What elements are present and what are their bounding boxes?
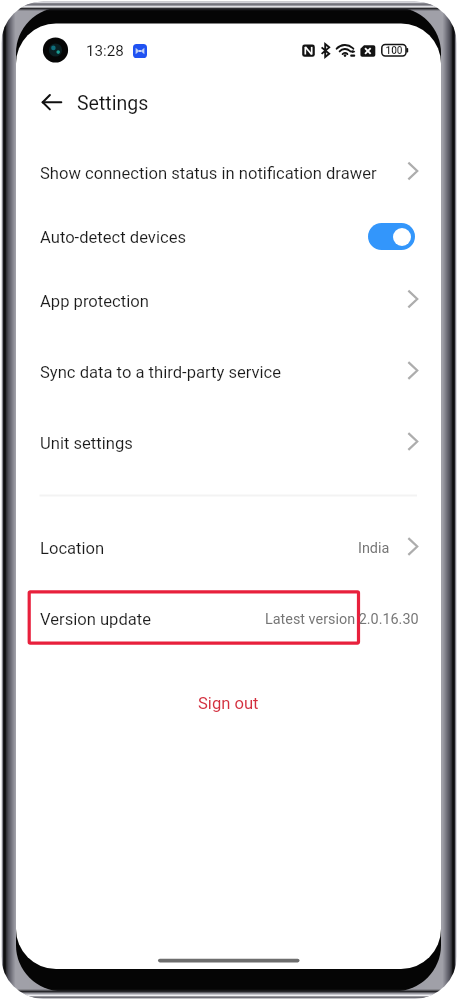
staticText: App protection: [40, 292, 149, 311]
staticText: Location: [40, 539, 105, 558]
staticText: India: [358, 540, 390, 557]
button[interactable]: Back: [32, 82, 72, 122]
button[interactable]: Auto-detect devices: [16, 205, 441, 269]
staticText: 100: [382, 45, 406, 57]
button[interactable]: Show connection status in notification d…: [16, 141, 441, 205]
staticText: Latest version 2.0.16.30: [265, 611, 419, 628]
staticText: Auto-detect devices: [40, 228, 186, 247]
button[interactable]: Sign out: [16, 680, 441, 726]
button[interactable]: Location: [16, 516, 441, 580]
staticText: Sign out: [198, 694, 259, 713]
button[interactable]: App protection: [16, 269, 441, 333]
staticText: Unit settings: [40, 434, 133, 453]
button[interactable]: Unit settings: [16, 411, 441, 475]
staticText: Version update: [40, 610, 152, 629]
staticText: Show connection status in notification d…: [40, 164, 377, 183]
button[interactable]: Auto-detect devices toggle: [368, 223, 415, 250]
staticText: 13:28: [86, 42, 124, 60]
staticText: Sync data to a third-party service: [40, 363, 282, 382]
button[interactable]: Version update: [16, 587, 441, 651]
staticText: Settings: [77, 92, 149, 115]
button[interactable]: Sync data to a third-party service: [16, 340, 441, 404]
